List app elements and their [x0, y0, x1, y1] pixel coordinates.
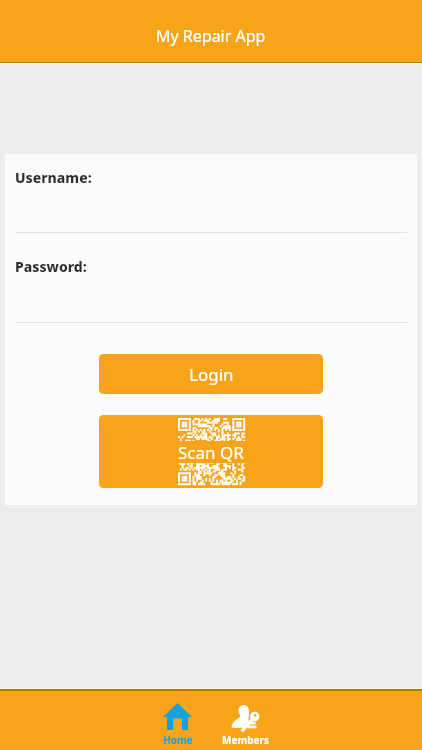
staticText: My Repair App [156, 25, 266, 47]
button[interactable]: Login [99, 354, 323, 394]
button[interactable]: Password input [16, 253, 407, 323]
staticText: Login [189, 363, 234, 386]
staticText: Home [163, 733, 193, 747]
staticText: Members [222, 733, 269, 747]
staticText: Scan QR [178, 441, 244, 463]
button[interactable]: Username input [16, 164, 407, 233]
other: Members [231, 703, 260, 730]
button[interactable]: Home [143, 691, 212, 750]
staticText: Username: [15, 168, 92, 187]
button[interactable]: Members [211, 691, 280, 750]
staticText: Password: [15, 257, 87, 276]
other: Home [163, 703, 192, 730]
button[interactable]: Scan QR [99, 415, 323, 488]
